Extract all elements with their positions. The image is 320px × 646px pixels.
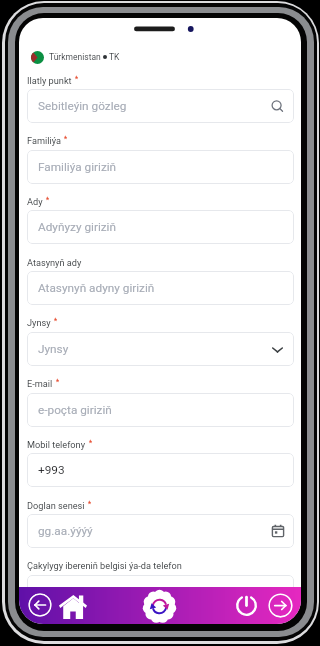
- staticText: Jynsy: [27, 317, 51, 328]
- button[interactable]: Jynsy: [27, 332, 294, 366]
- button[interactable]: +993: [27, 453, 294, 487]
- staticText: Doglan senesi: [27, 500, 85, 511]
- button[interactable]: Forward: [268, 593, 293, 618]
- staticText: Çakylygy ibereniň belgisi ýa-da telefon: [27, 560, 182, 571]
- button[interactable]: Türkmenistan: [31, 48, 120, 66]
- staticText: E-mail: [27, 378, 53, 389]
- staticText: *: [46, 196, 50, 204]
- staticText: *: [56, 378, 60, 386]
- staticText: Jynsy: [38, 342, 69, 356]
- staticText: *: [88, 500, 92, 508]
- staticText: Atasynyň ady: [27, 257, 82, 268]
- staticText: Atasynyň adyny giriziň: [38, 281, 155, 295]
- staticText: *: [54, 317, 58, 325]
- other: Open dropdown: [270, 342, 285, 357]
- staticText: e-poçta giriziň: [38, 403, 112, 417]
- staticText: *: [75, 75, 79, 83]
- button[interactable]: Power: [235, 594, 258, 617]
- staticText: Familiýa giriziň: [38, 160, 117, 174]
- staticText: Familiýa: [27, 135, 61, 146]
- button[interactable]: Refresh: [143, 590, 176, 623]
- staticText: Sebitleýin gözleg: [38, 99, 127, 113]
- button[interactable]: [27, 575, 294, 609]
- staticText: Türkmenistan: [49, 52, 103, 62]
- button[interactable]: Familiýa giriziň: [27, 150, 294, 184]
- staticText: *: [64, 135, 68, 143]
- staticText: Adyňyzy giriziň: [38, 220, 116, 234]
- button[interactable]: Back: [28, 593, 52, 617]
- staticText: Ady: [27, 196, 43, 207]
- button[interactable]: Atasynyň adyny giriziň: [27, 271, 294, 305]
- other: Search: [270, 99, 285, 114]
- staticText: +993: [38, 463, 65, 477]
- staticText: TK: [107, 52, 120, 62]
- staticText: Ilatly punkt: [27, 75, 72, 86]
- button[interactable]: e-poçta giriziň: [27, 393, 294, 427]
- button[interactable]: Sebitleýin gözleg: [27, 89, 294, 123]
- button[interactable]: Adyňyzy giriziň: [27, 210, 294, 244]
- staticText: Mobil telefony: [27, 439, 86, 450]
- other: Pick date: [271, 524, 285, 538]
- button[interactable]: Home: [59, 595, 87, 619]
- staticText: gg.aa.ýýýý: [38, 524, 93, 538]
- staticText: *: [89, 439, 93, 447]
- button[interactable]: gg.aa.ýýýý: [27, 514, 294, 548]
